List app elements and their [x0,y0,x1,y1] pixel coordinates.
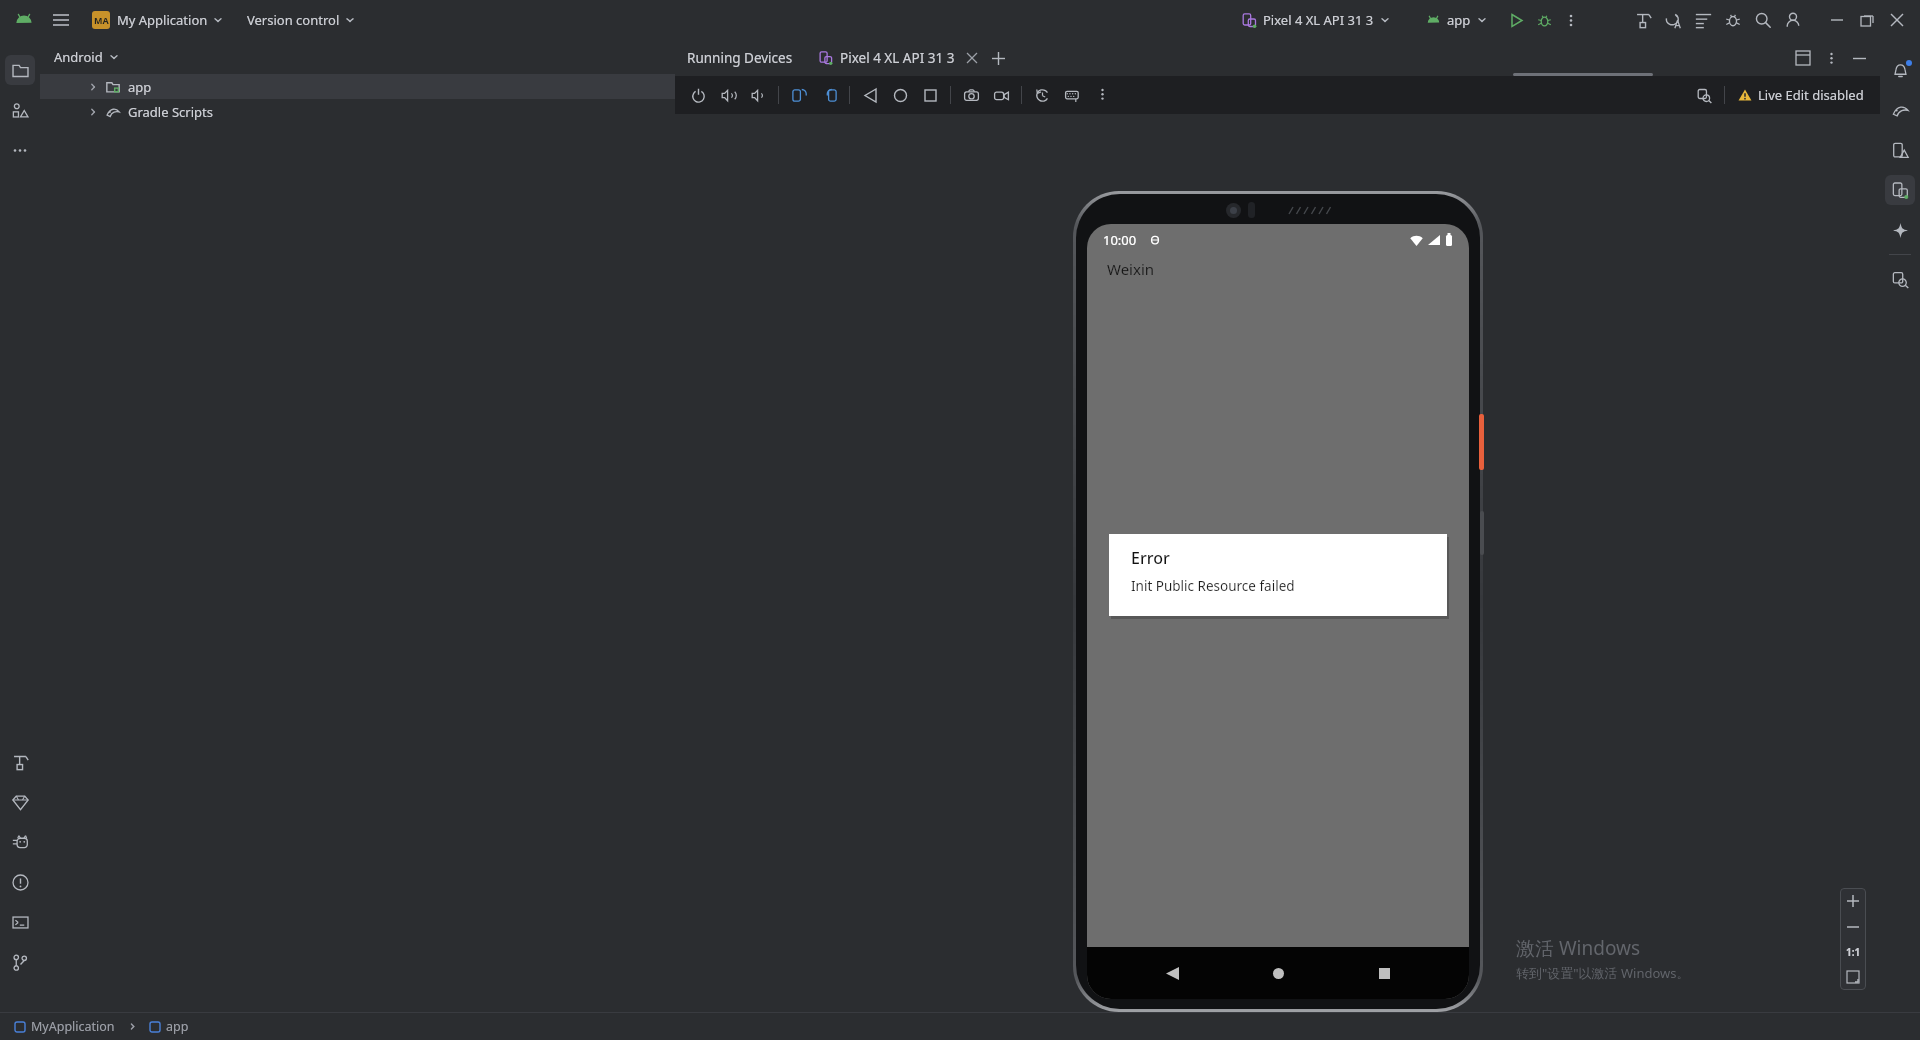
button[interactable]: Pixel 4 XL API 31 3 [813,40,983,76]
button[interactable]: Snapshots [1027,80,1057,110]
button[interactable]: MyApplication [12,1018,118,1035]
button[interactable]: Layout [1788,43,1818,73]
other: Problems [12,874,29,891]
button[interactable]: More [1087,80,1117,110]
button[interactable]: Home [885,80,915,110]
button[interactable]: Overview [915,80,945,110]
button[interactable]: Device Manager [1885,135,1915,165]
button[interactable]: app [40,74,675,99]
button[interactable]: Recents [1363,952,1405,994]
button[interactable]: Running Devices [1885,175,1915,205]
staticText: app [1447,11,1471,29]
button[interactable]: Gradle [5,787,35,817]
other: Build [1635,12,1652,29]
button[interactable]: Power [683,80,713,110]
button[interactable]: Gemini [1885,215,1915,245]
button[interactable]: Version control [243,8,359,32]
button[interactable]: Options [1818,45,1844,71]
other: Maximize [1861,14,1873,26]
button[interactable]: Main menu [48,7,74,33]
staticText: Init Public Resource failed [1131,577,1295,595]
other: Search everywhere 2 [1665,12,1682,29]
other: Terminal [12,914,29,931]
button[interactable]: Record [986,80,1016,110]
button[interactable]: Live Edit disabled [1730,86,1872,104]
button[interactable]: Gradle [1885,95,1915,125]
staticText: Pixel 4 XL API 31 3 [840,49,955,67]
button[interactable]: Notifications list [1688,5,1718,35]
button[interactable]: Settings [1718,5,1748,35]
other: Home [1273,968,1284,979]
other: Overview [923,88,938,103]
button[interactable]: Back [1151,952,1193,994]
button[interactable]: Debug [1530,6,1558,34]
other: Home [893,88,908,103]
button[interactable]: Build [5,747,35,777]
button[interactable]: Inspect [1689,80,1719,110]
button[interactable]: Search [1748,5,1778,35]
button[interactable]: Rotate left [784,80,814,110]
other: Device Manager [1892,142,1909,159]
button[interactable]: Keyboard [1057,80,1087,110]
button[interactable]: Gradle Scripts [40,99,675,124]
staticText: My Application [117,11,208,29]
button[interactable]: Volume up [713,80,743,110]
button[interactable]: Volume down [743,80,773,110]
other: Inspect [1697,88,1712,103]
button[interactable]: Zoom in [1840,888,1866,914]
staticText: 转到"设置"以激活 Windows。 [1516,964,1690,982]
other: Options [1825,52,1838,65]
button[interactable]: app [1421,8,1492,32]
button[interactable]: More [1558,7,1584,33]
staticText: Running Devices [687,49,793,67]
other: More tool windows [12,142,29,159]
button[interactable]: Problems [5,867,35,897]
button[interactable]: Hide [1844,43,1874,73]
button[interactable]: More tool windows [5,135,35,165]
button[interactable]: Account [1778,5,1808,35]
other: Hide [1853,52,1866,65]
button[interactable]: Android [40,40,675,74]
button[interactable]: Terminal [5,907,35,937]
button[interactable]: Layout Inspector [1885,264,1915,294]
staticText: 1:1 [1846,945,1861,959]
button[interactable]: Pixel 4 XL API 31 3 [1237,8,1395,32]
staticText: MA [94,14,109,26]
button[interactable]: Error [1109,534,1447,616]
button[interactable]: Build [1628,5,1658,35]
staticText: 10:00 [1103,231,1137,249]
button[interactable]: Device Manager [5,827,35,857]
button[interactable]: Home [1257,952,1299,994]
other: Zoom in [1847,895,1859,907]
other: Close tab [967,53,977,63]
staticText: Android [54,48,103,66]
button[interactable]: Project [5,55,35,85]
other: Back [863,88,878,103]
button[interactable]: MA [88,8,227,32]
button[interactable]: Close [1882,5,1912,35]
button[interactable]: New tab [983,43,1013,73]
button[interactable]: Zoom to fit [1840,964,1866,990]
staticText: 激活 Windows [1516,935,1641,961]
button[interactable]: app [147,1018,192,1035]
staticText: Pixel 4 XL API 31 3 [1263,11,1374,29]
other: More [1095,88,1110,103]
button[interactable]: Run [1502,6,1530,34]
button[interactable]: Minimize [1822,5,1852,35]
button[interactable]: Zoom out [1840,914,1866,940]
button[interactable]: 1:1 [1841,940,1865,964]
other: Power [691,88,706,103]
other: Main menu [52,11,70,29]
button[interactable]: Rotate right [814,80,844,110]
button[interactable]: Screenshot [956,80,986,110]
button[interactable]: Search everywhere 2 [1658,5,1688,35]
button[interactable]: Git [5,947,35,977]
button[interactable]: Notifications [1885,55,1915,85]
staticText: Gradle Scripts [128,103,213,121]
button[interactable]: Maximize [1852,5,1882,35]
other: Record [994,88,1009,103]
button[interactable]: Resource Manager [5,95,35,125]
other: Rotate left [792,88,807,103]
button[interactable]: Back [855,80,885,110]
